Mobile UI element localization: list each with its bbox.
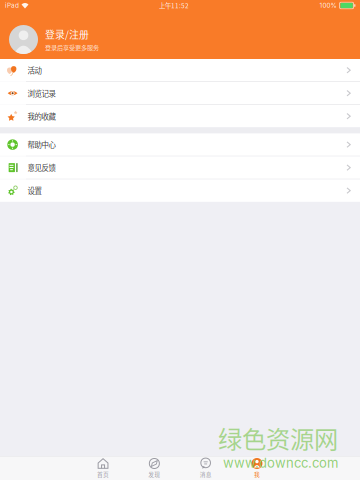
staticText: 登录后享受更多服务: [45, 43, 99, 52]
staticText: 登录/注册: [45, 27, 89, 41]
button[interactable]: 设置: [0, 179, 360, 202]
staticText: www.downcc.com: [223, 455, 338, 471]
staticText: 上午11:52: [159, 1, 189, 10]
staticText: 活动: [28, 65, 42, 76]
staticText: 意见反馈: [28, 162, 56, 173]
staticText: 发现: [148, 470, 160, 478]
staticText: 帮助中心: [28, 139, 56, 150]
staticText: 设置: [28, 185, 42, 196]
button[interactable]: 浏览记录: [0, 82, 360, 104]
staticText: 浏览记录: [28, 88, 56, 99]
staticText: 我的收藏: [28, 111, 56, 122]
button[interactable]: 帮助中心: [0, 133, 360, 156]
button[interactable]: 我: [231, 456, 283, 480]
staticText: 首页: [97, 470, 109, 478]
button[interactable]: 消息: [180, 456, 231, 480]
button[interactable]: 意见反馈: [0, 156, 360, 179]
button[interactable]: 首页: [77, 456, 129, 480]
staticText: 绿色资源网: [218, 420, 338, 455]
staticText: 消息: [200, 470, 212, 478]
button[interactable]: 我的收藏: [0, 105, 360, 127]
button[interactable]: 发现: [129, 456, 180, 480]
staticText: 我: [254, 470, 260, 478]
staticText: 100%: [319, 2, 336, 9]
button[interactable]: 活动: [0, 59, 360, 81]
staticText: iPad: [5, 2, 19, 9]
